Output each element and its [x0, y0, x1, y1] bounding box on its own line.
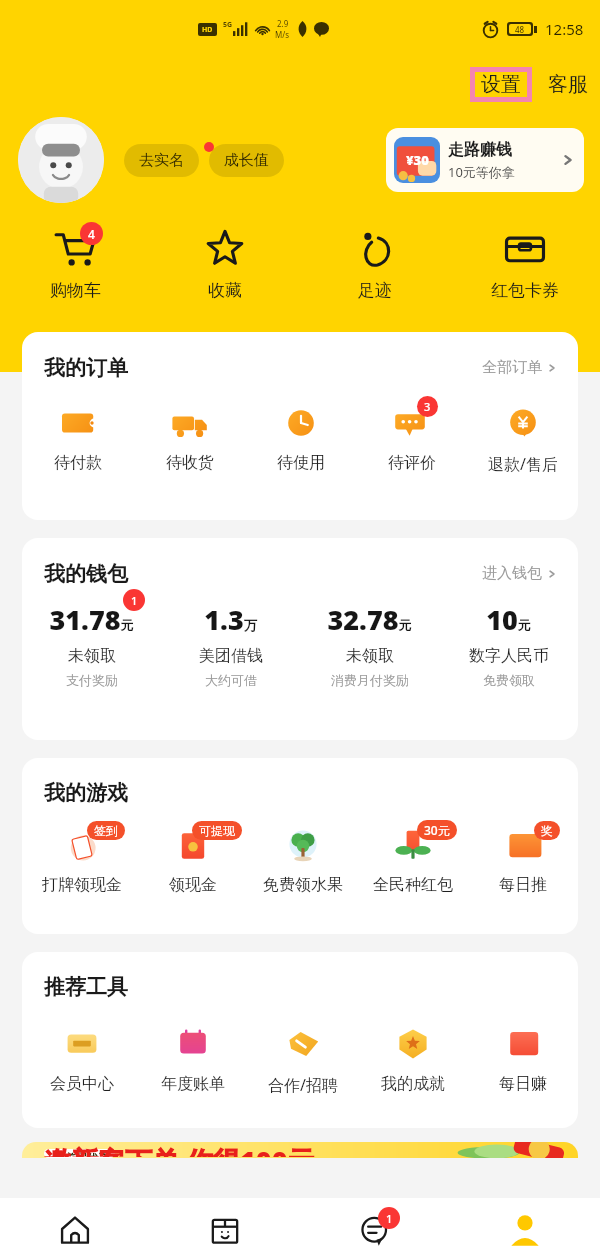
staticText: 美团借钱 [199, 646, 263, 666]
staticText: 奖 [541, 823, 553, 838]
staticText: 合作/招聘 [268, 1074, 338, 1096]
button[interactable]: 成长值 [209, 144, 284, 177]
staticText: ¥30 [406, 151, 429, 169]
staticText: 走路赚钱 [448, 140, 512, 160]
button[interactable]: 可提现 [137, 818, 248, 895]
button[interactable]: Home [0, 1198, 150, 1260]
button[interactable]: 退款/售后 [467, 403, 578, 475]
staticText: 我的成就 [381, 1074, 445, 1094]
staticText: 成长值 [224, 151, 269, 170]
button[interactable]: 红包卡券 [450, 210, 600, 318]
button[interactable]: 我的成就 [358, 1024, 468, 1094]
button[interactable]: 客服 [546, 66, 590, 103]
staticText: 30元 [424, 822, 450, 838]
staticText: 会员中心 [50, 1074, 114, 1094]
staticText: 待评价 [388, 453, 436, 473]
staticText: 每日赚 [499, 1074, 547, 1094]
button[interactable]: 每日赚 [468, 1024, 578, 1094]
button[interactable]: 美团优选 [22, 1142, 578, 1158]
button[interactable]: 足迹 [300, 210, 450, 318]
button[interactable]: 全部订单 [478, 354, 562, 381]
button[interactable]: 会员中心 [26, 1024, 137, 1094]
staticText: 领现金 [169, 875, 217, 895]
staticText: 未领取 [346, 646, 394, 666]
staticText: 每日推 [499, 875, 547, 895]
staticText: 全民种红包 [373, 875, 453, 895]
staticText: 红包卡券 [491, 280, 559, 301]
staticText: M/s [275, 29, 290, 40]
button[interactable]: 30元 [358, 818, 468, 895]
button[interactable]: 4 [0, 210, 150, 318]
staticText: 支付奖励 [66, 672, 118, 688]
staticText: 免费领水果 [263, 875, 343, 895]
staticText: 邀新客下单 你得100元 [44, 1142, 315, 1157]
button[interactable]: Messages [300, 1198, 450, 1260]
button[interactable]: Profile [450, 1198, 600, 1260]
staticText: 待收货 [166, 453, 214, 473]
staticText: HD [202, 25, 213, 35]
staticText: 1 [386, 1211, 393, 1226]
staticText: 足迹 [358, 280, 392, 301]
staticText: 我的订单 [44, 355, 128, 381]
staticText: 客服 [548, 72, 588, 97]
staticText: 年度账单 [161, 1074, 225, 1094]
staticText: 全部订单 [482, 358, 542, 377]
staticText: 设置 [481, 72, 521, 97]
staticText: 大约可借 [205, 672, 257, 688]
staticText: 12:58 [545, 19, 584, 39]
button[interactable]: 1.3万 [161, 601, 300, 688]
button[interactable]: 31.78元 [22, 601, 161, 688]
button[interactable]: Orders [150, 1198, 300, 1260]
button[interactable]: 设置 [470, 67, 532, 102]
staticText: 2.9 [277, 18, 289, 29]
button[interactable]: 10元 [439, 601, 578, 688]
button[interactable]: 奖 [468, 818, 578, 895]
staticText: 推荐工具 [44, 974, 128, 1000]
button[interactable]: 合作/招聘 [248, 1024, 358, 1096]
staticText: 免费领取 [483, 672, 535, 688]
button[interactable]: 收藏 [150, 210, 300, 318]
staticText: 可提现 [199, 823, 235, 838]
staticText: 打牌领现金 [42, 875, 122, 895]
staticText: 10元 [486, 601, 531, 638]
staticText: 购物车 [50, 280, 101, 301]
button[interactable]: 签到 [26, 818, 137, 895]
staticText: 我的游戏 [44, 780, 128, 806]
button[interactable]: 免费领水果 [248, 818, 358, 895]
staticText: 31.78元 [49, 601, 134, 638]
staticText: 48 [515, 24, 525, 34]
button[interactable]: 待付款 [22, 403, 134, 473]
button[interactable]: ¥30 [386, 128, 584, 192]
button[interactable]: 去实名 [124, 144, 199, 177]
staticText: 3 [424, 399, 431, 414]
button[interactable]: Avatar [18, 117, 104, 203]
staticText: 退款/售后 [488, 453, 558, 475]
staticText: 4 [88, 226, 95, 242]
staticText: 5G [223, 20, 233, 30]
staticText: 美团优选 [65, 1151, 109, 1156]
staticText: 进入钱包 [482, 564, 542, 583]
button[interactable]: 待收货 [134, 403, 245, 473]
staticText: 32.78元 [327, 601, 412, 638]
button[interactable]: 32.78元 [300, 601, 439, 688]
button[interactable]: 待使用 [245, 403, 356, 473]
staticText: 10元等你拿 [448, 163, 515, 181]
staticText: 收藏 [208, 280, 242, 301]
staticText: 待使用 [277, 453, 325, 473]
staticText: 签到 [94, 823, 118, 838]
staticText: 未领取 [68, 646, 116, 666]
staticText: 去实名 [139, 151, 184, 170]
staticText: 1.3万 [204, 601, 257, 638]
staticText: 1 [131, 593, 138, 608]
staticText: 待付款 [54, 453, 102, 473]
button[interactable]: 3 [356, 403, 467, 473]
staticText: 数字人民币 [469, 646, 549, 666]
button[interactable]: 年度账单 [137, 1024, 248, 1094]
button[interactable]: 进入钱包 [478, 560, 562, 587]
staticText: 消费月付奖励 [331, 672, 409, 688]
staticText: 我的钱包 [44, 561, 128, 587]
